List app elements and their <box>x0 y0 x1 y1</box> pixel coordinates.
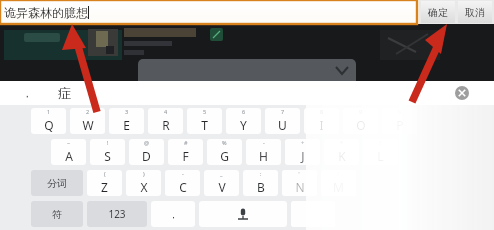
button[interactable]: - <box>246 139 281 165</box>
staticText: 7 <box>281 108 285 115</box>
staticText: H <box>259 148 268 164</box>
button[interactable]: ( <box>87 170 122 196</box>
staticText: A <box>65 148 73 164</box>
staticText: ， <box>22 87 32 100</box>
button[interactable]: ) <box>126 170 161 196</box>
staticText: Y <box>240 117 247 133</box>
button[interactable]: ， <box>151 201 195 227</box>
staticText: N <box>295 179 305 195</box>
staticText: Z <box>101 179 108 195</box>
button[interactable]: 8 <box>304 108 339 134</box>
staticText: + <box>301 139 305 146</box>
staticText: 诡异森林的臆想 <box>4 5 88 20</box>
button[interactable]: @ <box>129 139 164 165</box>
staticText: R <box>162 117 170 133</box>
staticText: Q <box>44 117 54 133</box>
staticText: I <box>319 117 324 133</box>
staticText: B <box>257 179 265 195</box>
staticText: S <box>104 148 111 164</box>
staticText: V <box>218 179 226 195</box>
staticText: E <box>123 117 130 133</box>
button[interactable]: 诡异森林的臆想 <box>0 0 419 24</box>
staticText: J <box>301 148 305 164</box>
staticText: C <box>179 179 187 195</box>
staticText: 分词 <box>47 177 67 190</box>
staticText: 2 <box>86 108 90 115</box>
button[interactable]: 6 <box>226 108 261 134</box>
button[interactable]: Voice input <box>199 201 287 227</box>
button[interactable]: 分词 <box>31 170 83 196</box>
button[interactable]: ! <box>90 139 125 165</box>
staticText: 5 <box>203 108 207 115</box>
staticText: ! <box>107 139 109 146</box>
staticText: ~ <box>67 139 71 146</box>
staticText: : <box>260 170 262 177</box>
staticText: 取消 <box>465 6 485 19</box>
button[interactable]: + <box>285 139 320 165</box>
button[interactable]: - <box>165 170 200 196</box>
button[interactable]: 1 <box>31 108 66 134</box>
staticText: 6 <box>242 108 246 115</box>
staticText: - <box>263 139 265 146</box>
staticText: " <box>298 170 301 177</box>
staticText: ( <box>104 170 106 177</box>
staticText: O <box>356 117 366 133</box>
staticText: W <box>82 117 94 133</box>
staticText: 4 <box>164 108 168 115</box>
staticText: X <box>140 179 148 195</box>
button[interactable]: ~ <box>51 139 86 165</box>
staticText: ) <box>143 170 145 177</box>
button[interactable]: ， <box>0 81 494 105</box>
button[interactable]: : <box>243 170 278 196</box>
staticText: F <box>182 148 189 164</box>
button[interactable]: 确定 <box>421 1 455 23</box>
button[interactable]: Close keyboard <box>455 86 469 100</box>
button[interactable]: 7 <box>265 108 300 134</box>
staticText: 123 <box>108 207 126 221</box>
button[interactable]: 2 <box>70 108 105 134</box>
staticText: K <box>338 148 346 164</box>
button[interactable]: 4 <box>148 108 183 134</box>
staticText: T <box>201 117 208 133</box>
staticText: 3 <box>125 108 129 115</box>
staticText: % <box>222 139 227 146</box>
staticText: ， <box>169 209 178 220</box>
staticText: _ <box>220 170 223 177</box>
button[interactable]: % <box>207 139 242 165</box>
button[interactable]: " <box>282 170 317 196</box>
staticText: D <box>142 148 151 164</box>
staticText: # <box>184 139 188 146</box>
button[interactable]: 5 <box>187 108 222 134</box>
button[interactable]: # <box>168 139 203 165</box>
staticText: 症 <box>58 85 71 101</box>
button[interactable]: 123 <box>87 201 147 227</box>
button[interactable]: 符 <box>31 201 83 227</box>
staticText: 符 <box>52 208 62 221</box>
staticText: U <box>278 117 287 133</box>
staticText: 1 <box>47 108 51 115</box>
staticText: G <box>220 148 229 164</box>
staticText: M <box>333 179 344 195</box>
button[interactable]: _ <box>204 170 239 196</box>
staticText: 确定 <box>428 6 448 19</box>
button[interactable]: 取消 <box>458 1 492 23</box>
staticText: - <box>182 170 184 177</box>
button[interactable]: 3 <box>109 108 144 134</box>
staticText: 8 <box>320 108 324 115</box>
staticText: @ <box>144 139 149 146</box>
